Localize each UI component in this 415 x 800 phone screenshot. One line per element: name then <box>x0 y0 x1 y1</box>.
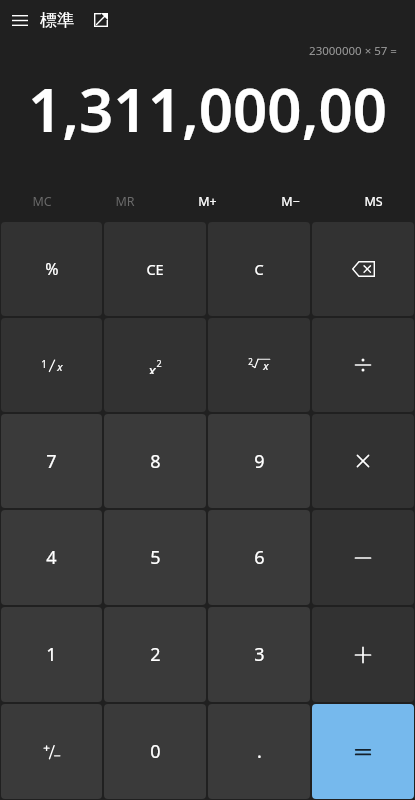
button[interactable]: MS <box>332 188 415 214</box>
button[interactable]: 1 <box>1 607 102 702</box>
button[interactable]: C <box>208 222 310 316</box>
staticText: 1,311,000,000 <box>14 68 401 142</box>
button[interactable]: Square root <box>208 318 310 412</box>
button[interactable]: MC <box>0 188 83 214</box>
staticText: 2 <box>150 642 161 667</box>
staticText: CE <box>146 259 164 279</box>
button[interactable]: MR <box>83 188 166 214</box>
button[interactable]: Minus <box>312 510 414 605</box>
staticText: 23000000 × 57 = <box>309 43 397 59</box>
staticText: x <box>263 358 269 373</box>
staticText: 5 <box>150 545 161 570</box>
staticText: 2 <box>248 356 253 367</box>
button[interactable]: M+ <box>166 188 249 214</box>
staticText: 6 <box>254 545 265 570</box>
button[interactable]: Navigation menu <box>0 0 40 40</box>
staticText: . <box>257 739 262 764</box>
button[interactable]: 3 <box>208 607 310 702</box>
staticText: x <box>148 360 156 374</box>
button[interactable]: . <box>208 704 310 799</box>
staticText: % <box>45 258 59 280</box>
staticText: MR <box>115 193 135 210</box>
button[interactable]: % <box>1 222 102 316</box>
button[interactable]: 6 <box>208 510 310 605</box>
staticText: 4 <box>46 545 57 570</box>
staticText: 8 <box>150 449 161 474</box>
staticText: M+ <box>198 193 217 210</box>
staticText: 0 <box>150 739 161 764</box>
button[interactable]: x squared <box>104 318 206 412</box>
staticText: 1 <box>46 642 57 667</box>
button[interactable]: 9 <box>208 414 310 508</box>
button[interactable]: Positive negative <box>1 704 102 799</box>
button[interactable]: 4 <box>1 510 102 605</box>
staticText: MS <box>364 193 383 210</box>
staticText: 1 <box>41 357 47 371</box>
button[interactable]: CE <box>104 222 206 316</box>
button[interactable]: Plus <box>312 607 414 702</box>
staticText: C <box>254 259 264 279</box>
button[interactable]: One divided by x <box>1 318 102 412</box>
button[interactable]: Equals <box>312 704 414 799</box>
staticText: M− <box>281 193 300 210</box>
button[interactable]: 7 <box>1 414 102 508</box>
staticText: x <box>57 359 63 374</box>
button[interactable]: 5 <box>104 510 206 605</box>
staticText: MC <box>32 193 52 210</box>
button[interactable]: Divide <box>312 318 414 412</box>
button[interactable]: M− <box>249 188 332 214</box>
button[interactable]: 8 <box>104 414 206 508</box>
button[interactable]: 0 <box>104 704 206 799</box>
button[interactable]: Keep on top <box>84 3 118 37</box>
staticText: 2 <box>156 357 162 369</box>
staticText: 9 <box>254 449 265 474</box>
staticText: 7 <box>46 449 57 474</box>
staticText: 3 <box>254 642 265 667</box>
button[interactable]: Multiply <box>312 414 414 508</box>
staticText: 標準 <box>40 10 74 31</box>
button[interactable]: Backspace <box>312 222 414 316</box>
button[interactable]: 2 <box>104 607 206 702</box>
